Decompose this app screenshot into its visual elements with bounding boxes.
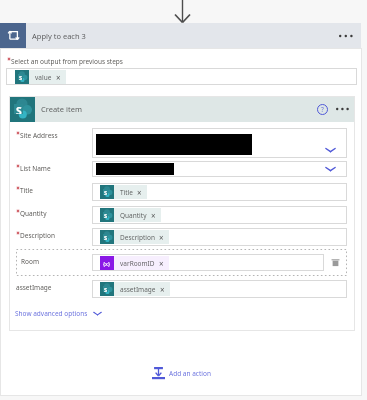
staticText: assetImage [120,285,156,294]
staticText: S [19,74,23,80]
staticText: assetImage [16,283,52,292]
staticText: × [159,258,164,269]
staticText: Title [120,188,133,197]
staticText: Quantity [20,209,47,218]
staticText: Site Address [20,131,58,140]
button[interactable]: Help [312,99,332,119]
staticText: ? [321,105,324,114]
button[interactable]: {x} [92,254,324,271]
staticText: Description [120,233,155,242]
button[interactable]: S [92,228,347,246]
staticText: varRoomID [120,259,155,268]
staticText: Apply to each 3 [32,31,86,41]
button[interactable] [92,128,347,158]
staticText: Room [21,257,92,266]
staticText: Show advanced options [15,309,88,318]
staticText: Create item [41,104,82,114]
staticText: Quantity [120,211,147,220]
staticText: value [35,73,52,82]
button[interactable]: S [9,96,355,122]
button[interactable]: S [92,280,347,298]
button[interactable]: More options [332,99,352,119]
button[interactable]: S [100,185,147,199]
button[interactable]: S [100,282,170,296]
button[interactable]: S [6,68,357,85]
staticText: Add an action [169,369,211,378]
button[interactable]: S [92,183,347,201]
staticText: S [104,234,108,240]
staticText: Select an output from previous steps [11,57,123,66]
staticText: Description [20,231,55,240]
staticText: {x} [103,260,111,267]
button[interactable]: S [100,208,161,222]
staticText: × [160,284,165,295]
staticText: × [159,232,164,243]
button[interactable]: Add an action [152,367,211,380]
staticText: Title [20,186,33,195]
staticText: S [104,212,108,218]
button[interactable]: S [92,206,347,224]
staticText: × [151,210,156,221]
staticText: × [137,187,142,198]
button[interactable]: More commands [334,24,358,48]
staticText: S [104,189,108,195]
button[interactable]: Apply to each 3 [0,23,361,48]
button[interactable]: S [100,230,169,244]
button[interactable] [92,161,347,177]
staticText: × [56,72,61,83]
button[interactable]: Show advanced options [15,309,102,318]
staticText: S [16,104,22,114]
staticText: S [104,286,108,292]
button[interactable]: Delete [324,254,346,271]
button[interactable]: {x} [100,256,169,270]
button[interactable]: S [15,70,66,84]
staticText: List Name [20,164,51,173]
